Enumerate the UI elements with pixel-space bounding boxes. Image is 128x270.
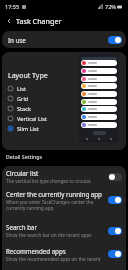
staticText: Show the recommended apps on the recent bbox=[6, 256, 101, 262]
button[interactable]: Search bar bbox=[2, 219, 126, 242]
button[interactable]: On bbox=[108, 227, 122, 235]
button[interactable]: On bbox=[108, 36, 122, 44]
staticText: Show the search bar on the recent apps s… bbox=[6, 232, 106, 238]
button[interactable]: Circular list bbox=[2, 166, 126, 187]
staticText: Slim List bbox=[17, 125, 39, 133]
staticText: Circular list bbox=[6, 169, 39, 177]
button[interactable]: Slim List bbox=[7, 124, 63, 133]
button[interactable]: Center the currently running app bbox=[2, 187, 126, 213]
staticText: Layout Type bbox=[8, 71, 48, 81]
staticText: In use bbox=[8, 36, 26, 44]
button[interactable]: List bbox=[7, 84, 63, 93]
staticText: Task Changer bbox=[16, 16, 62, 26]
button[interactable]: Stack bbox=[7, 104, 63, 113]
staticText: Recommended apps bbox=[6, 247, 66, 255]
button[interactable]: On bbox=[108, 196, 122, 204]
button[interactable]: Vertical List bbox=[7, 114, 63, 123]
staticText: Stack bbox=[17, 105, 31, 113]
staticText: When you enter TaskChanger, center the bbox=[6, 199, 94, 205]
button[interactable]: On bbox=[108, 250, 122, 258]
button[interactable]: Back bbox=[3, 15, 15, 27]
staticText: Grid bbox=[17, 95, 29, 103]
staticText: 17:55 bbox=[5, 3, 20, 10]
staticText: The vertical list type changes to circul… bbox=[6, 178, 92, 184]
button[interactable]: Grid bbox=[7, 94, 63, 103]
staticText: Center the currently running app bbox=[6, 190, 102, 198]
staticText: Detail Settings bbox=[6, 153, 43, 160]
staticText: currently running app. bbox=[6, 205, 55, 211]
staticText: 72% bbox=[105, 3, 116, 10]
staticText: Search bar bbox=[6, 223, 38, 231]
staticText: List bbox=[17, 85, 27, 93]
button[interactable]: Recommended apps bbox=[2, 242, 126, 266]
button[interactable]: Off bbox=[108, 173, 122, 181]
staticText: Vertical List bbox=[17, 115, 47, 123]
button[interactable]: In use bbox=[2, 31, 126, 48]
